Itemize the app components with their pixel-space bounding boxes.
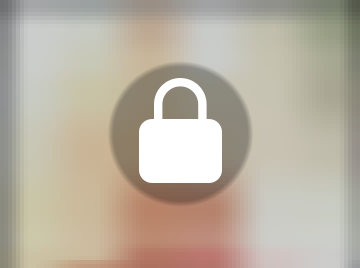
button[interactable]: Content locked [0, 0, 360, 268]
